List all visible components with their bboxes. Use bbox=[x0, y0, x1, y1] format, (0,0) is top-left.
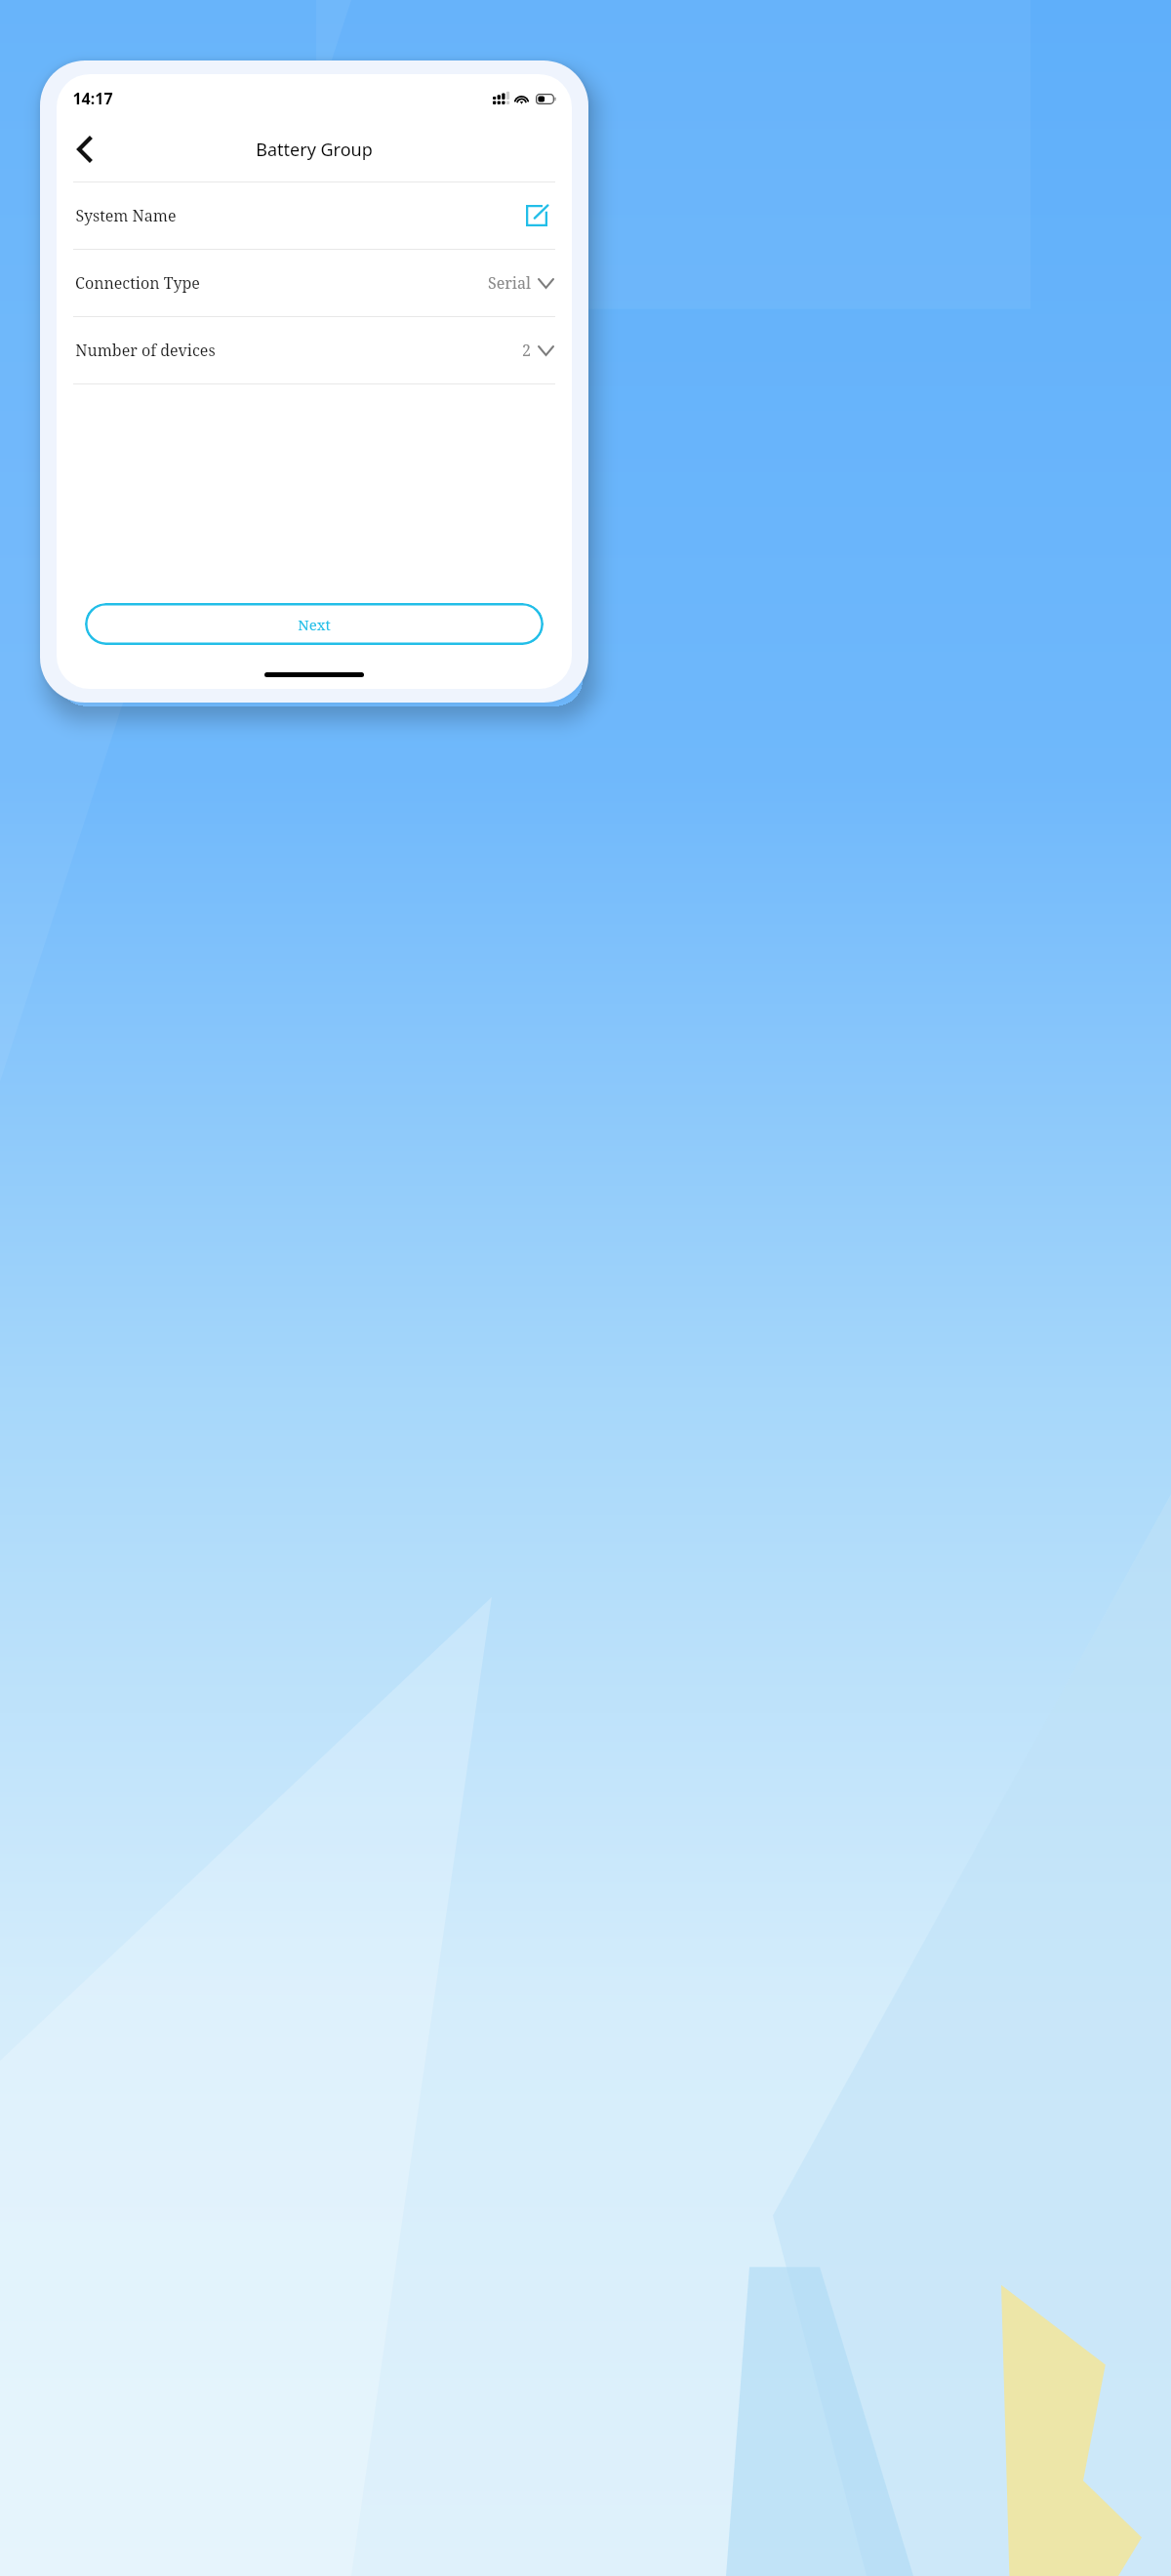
staticText: System Name bbox=[75, 205, 177, 226]
staticText: Connection Type bbox=[75, 272, 200, 294]
button[interactable]: Edit system name bbox=[520, 199, 553, 232]
staticText: Next bbox=[298, 615, 331, 634]
button[interactable]: System Name bbox=[57, 182, 572, 249]
staticText: 2 bbox=[522, 340, 531, 361]
button[interactable]: Next bbox=[85, 603, 544, 645]
staticText: Number of devices bbox=[75, 340, 216, 361]
button[interactable]: Number of devices bbox=[57, 317, 572, 383]
staticText: 14:17 bbox=[72, 88, 113, 109]
staticText: Serial bbox=[488, 272, 531, 294]
staticText: Battery Group bbox=[256, 138, 373, 162]
button[interactable]: Connection Type bbox=[57, 250, 572, 316]
button[interactable]: Back bbox=[64, 130, 103, 169]
